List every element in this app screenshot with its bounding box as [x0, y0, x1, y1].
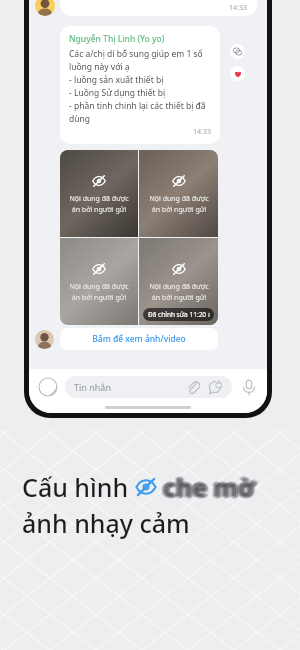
button[interactable]: Bấm để xem ảnh/video: [60, 328, 218, 350]
button[interactable]: Nguyễn Thị Linh (Yo yo): [60, 26, 220, 144]
staticText: Tin nhắn: [74, 381, 111, 393]
staticText: Nội dung đã được án bởi người gửi: [69, 282, 129, 302]
staticText: Nội dung đã được án bởi người gửi: [149, 282, 209, 302]
staticText: che mờ: [161, 469, 253, 503]
staticText: che mờ: [163, 470, 255, 504]
button[interactable]: Nội dung đã được án bởi người gửi: [60, 238, 138, 325]
button[interactable]: Avatar: [35, 0, 55, 16]
staticText: Nội dung đã được án bởi người gửi: [69, 194, 129, 214]
button[interactable]: Attach file: [185, 379, 201, 395]
staticText: Nội dung đã được án bởi người gửi: [149, 194, 209, 214]
staticText: che mờ: [165, 469, 257, 503]
button[interactable]: Avatar: [35, 330, 54, 349]
button[interactable]: Reaction: [230, 66, 245, 81]
staticText: 14:33: [229, 3, 247, 13]
button[interactable]: Voice message: [240, 378, 258, 396]
staticText: che mờ: [166, 470, 258, 504]
staticText: Đã chỉnh sửa 11:20: [148, 310, 207, 319]
staticText: Nguyễn Thị Linh (Yo yo): [69, 33, 165, 45]
button[interactable]: Stickers: [38, 377, 58, 397]
staticText: che mờ: [162, 469, 254, 503]
staticText: che mờ: [160, 470, 252, 504]
staticText: Bấm để xem ảnh/video: [92, 333, 186, 345]
staticText: che mờ: [161, 471, 253, 505]
staticText: che mờ: [165, 471, 257, 505]
staticText: che mờ: [163, 472, 255, 506]
staticText: 14:33: [193, 127, 211, 137]
staticText: che mờ: [164, 471, 256, 505]
button[interactable]: Nội dung đã được án bởi người gửi: [60, 150, 138, 237]
button[interactable]: Nội dung đã được án bởi người gửi: [139, 150, 218, 237]
staticText: ảnh nhạy cảm: [22, 506, 190, 540]
staticText: Cấu hình: [22, 470, 135, 504]
staticText: che mờ: [163, 468, 255, 502]
button[interactable]: Nội dung đã được án bởi người gửi: [139, 238, 218, 325]
button[interactable]: 14:33: [60, 0, 257, 16]
staticText: Các a/chị dí bổ sung giúp em 1 số luồng …: [69, 48, 211, 125]
button[interactable]: Tin nhắn: [65, 376, 232, 398]
button[interactable]: Private message: [207, 379, 223, 395]
button[interactable]: Reaction: [230, 44, 245, 59]
